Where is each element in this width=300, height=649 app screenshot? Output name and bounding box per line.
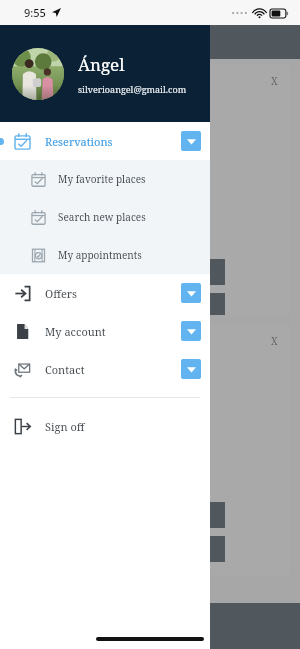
button[interactable]: Close	[264, 71, 284, 91]
staticText: X	[271, 74, 278, 88]
staticText: My favorite places	[58, 172, 146, 186]
staticText: X	[271, 334, 278, 348]
staticText: JONATHAN	[120, 217, 180, 232]
staticText: RESERVE	[128, 265, 172, 279]
button[interactable]: Close	[264, 331, 284, 351]
button[interactable]: My favorite places	[0, 160, 210, 198]
staticText: Contact	[45, 362, 85, 377]
button[interactable]: RESERVE	[75, 259, 225, 285]
button[interactable]: PROFILE	[75, 293, 225, 315]
staticText: My account	[45, 324, 106, 339]
button[interactable]: RESERVE	[75, 502, 225, 528]
button[interactable]: My appointments	[0, 236, 210, 274]
button[interactable]: PROFILE	[75, 536, 225, 562]
button[interactable]: Contacts	[133, 609, 167, 643]
staticText: My appointments	[58, 248, 142, 262]
staticText: silverioangel@gmail.com	[78, 83, 187, 95]
staticText: Search new places	[58, 210, 146, 224]
button[interactable]: Reservations	[0, 122, 210, 160]
staticText: Sign off	[45, 419, 85, 434]
button[interactable]: Expand	[181, 321, 201, 341]
button[interactable]: Sign off	[0, 407, 210, 445]
staticText: 9:55	[24, 5, 46, 20]
button[interactable]: Expand	[181, 283, 201, 303]
button[interactable]: Search new places	[0, 198, 210, 236]
button[interactable]: Expand	[181, 359, 201, 379]
staticText: Ángel	[78, 53, 125, 76]
button[interactable]: Expand	[181, 131, 201, 151]
button[interactable]: My account	[0, 312, 210, 350]
button[interactable]: Contact	[0, 350, 210, 388]
button[interactable]: Offers	[0, 274, 210, 312]
staticText: Offers	[45, 286, 77, 301]
staticText: Reservations	[45, 134, 113, 149]
